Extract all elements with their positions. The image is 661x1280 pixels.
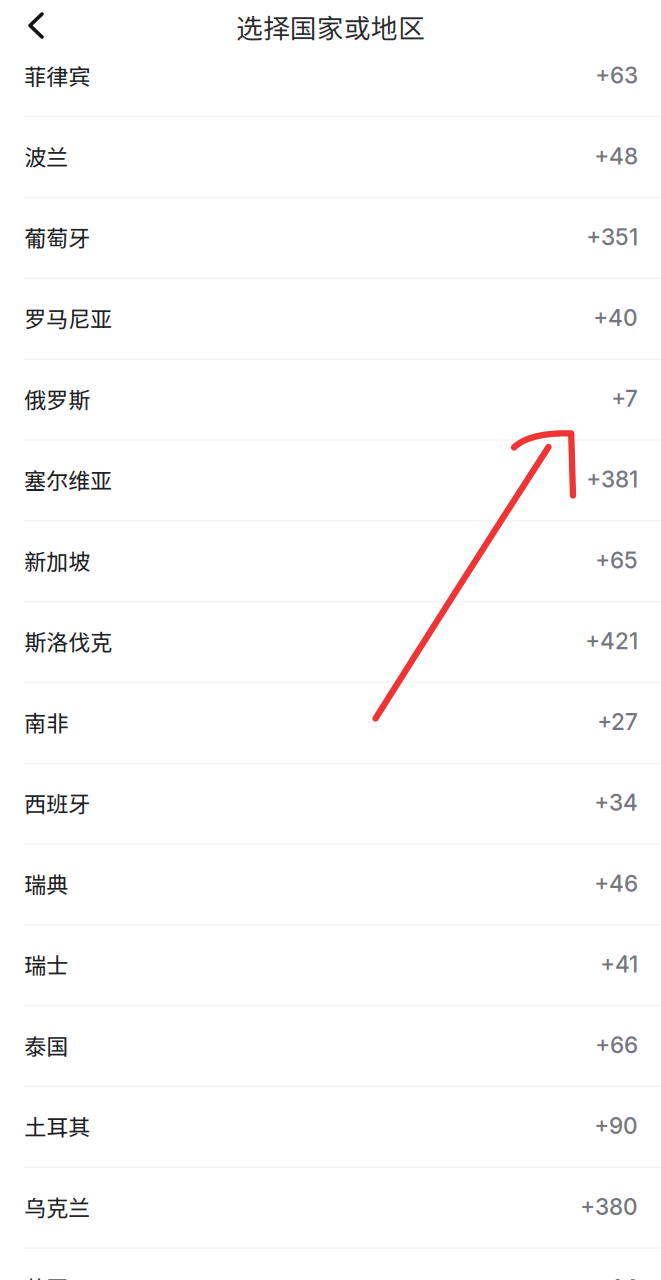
staticText: +34 xyxy=(594,789,638,816)
staticText: +381 xyxy=(586,466,638,493)
staticText: 罗马尼亚 xyxy=(24,302,112,334)
staticText: 斯洛伐克 xyxy=(24,625,112,657)
button[interactable]: 泰国 xyxy=(0,1006,661,1087)
staticText: +351 xyxy=(586,223,638,251)
button[interactable]: 波兰 xyxy=(0,118,661,198)
staticText: 英国 xyxy=(24,1271,68,1280)
button[interactable]: 俄罗斯 xyxy=(0,360,661,441)
staticText: +90 xyxy=(594,1112,638,1139)
button[interactable]: 瑞士 xyxy=(0,926,661,1006)
button[interactable]: 西班牙 xyxy=(0,764,661,845)
button[interactable]: 土耳其 xyxy=(0,1087,661,1168)
staticText: 瑞士 xyxy=(24,948,68,980)
button[interactable]: Back xyxy=(0,10,56,40)
button[interactable]: 瑞典 xyxy=(0,845,661,926)
staticText: 瑞典 xyxy=(24,867,68,899)
staticText: 俄罗斯 xyxy=(24,383,90,414)
staticText: 塞尔维亚 xyxy=(24,463,112,495)
button[interactable]: 罗马尼亚 xyxy=(0,279,661,360)
staticText: 泰国 xyxy=(24,1029,68,1061)
button[interactable]: 英国 xyxy=(0,1249,661,1280)
staticText: +27 xyxy=(597,708,638,735)
staticText: +40 xyxy=(593,304,638,331)
staticText: 波兰 xyxy=(24,140,68,172)
staticText: 葡萄牙 xyxy=(24,221,90,253)
staticText: +63 xyxy=(595,62,638,89)
staticText: +66 xyxy=(595,1031,638,1059)
staticText: +421 xyxy=(585,627,638,655)
button[interactable]: 菲律宾 xyxy=(0,37,661,118)
staticText: 选择国家或地区 xyxy=(236,7,425,46)
staticText: 西班牙 xyxy=(24,787,90,819)
button[interactable]: 葡萄牙 xyxy=(0,198,661,279)
staticText: +41 xyxy=(600,950,638,978)
staticText: 菲律宾 xyxy=(24,59,90,91)
staticText: +48 xyxy=(594,142,638,170)
staticText: +46 xyxy=(594,870,638,897)
staticText: +44 xyxy=(593,1274,638,1280)
staticText: 土耳其 xyxy=(24,1110,90,1142)
button[interactable]: 塞尔维亚 xyxy=(0,441,661,522)
button[interactable]: 乌克兰 xyxy=(0,1168,661,1249)
button[interactable]: 新加坡 xyxy=(0,522,661,602)
button[interactable]: 南非 xyxy=(0,683,661,764)
staticText: 新加坡 xyxy=(24,544,90,576)
staticText: 南非 xyxy=(24,706,68,738)
staticText: +7 xyxy=(611,385,638,412)
staticText: +65 xyxy=(595,546,638,574)
staticText: +380 xyxy=(580,1193,638,1220)
button[interactable]: 斯洛伐克 xyxy=(0,602,661,683)
staticText: 乌克兰 xyxy=(24,1191,90,1223)
